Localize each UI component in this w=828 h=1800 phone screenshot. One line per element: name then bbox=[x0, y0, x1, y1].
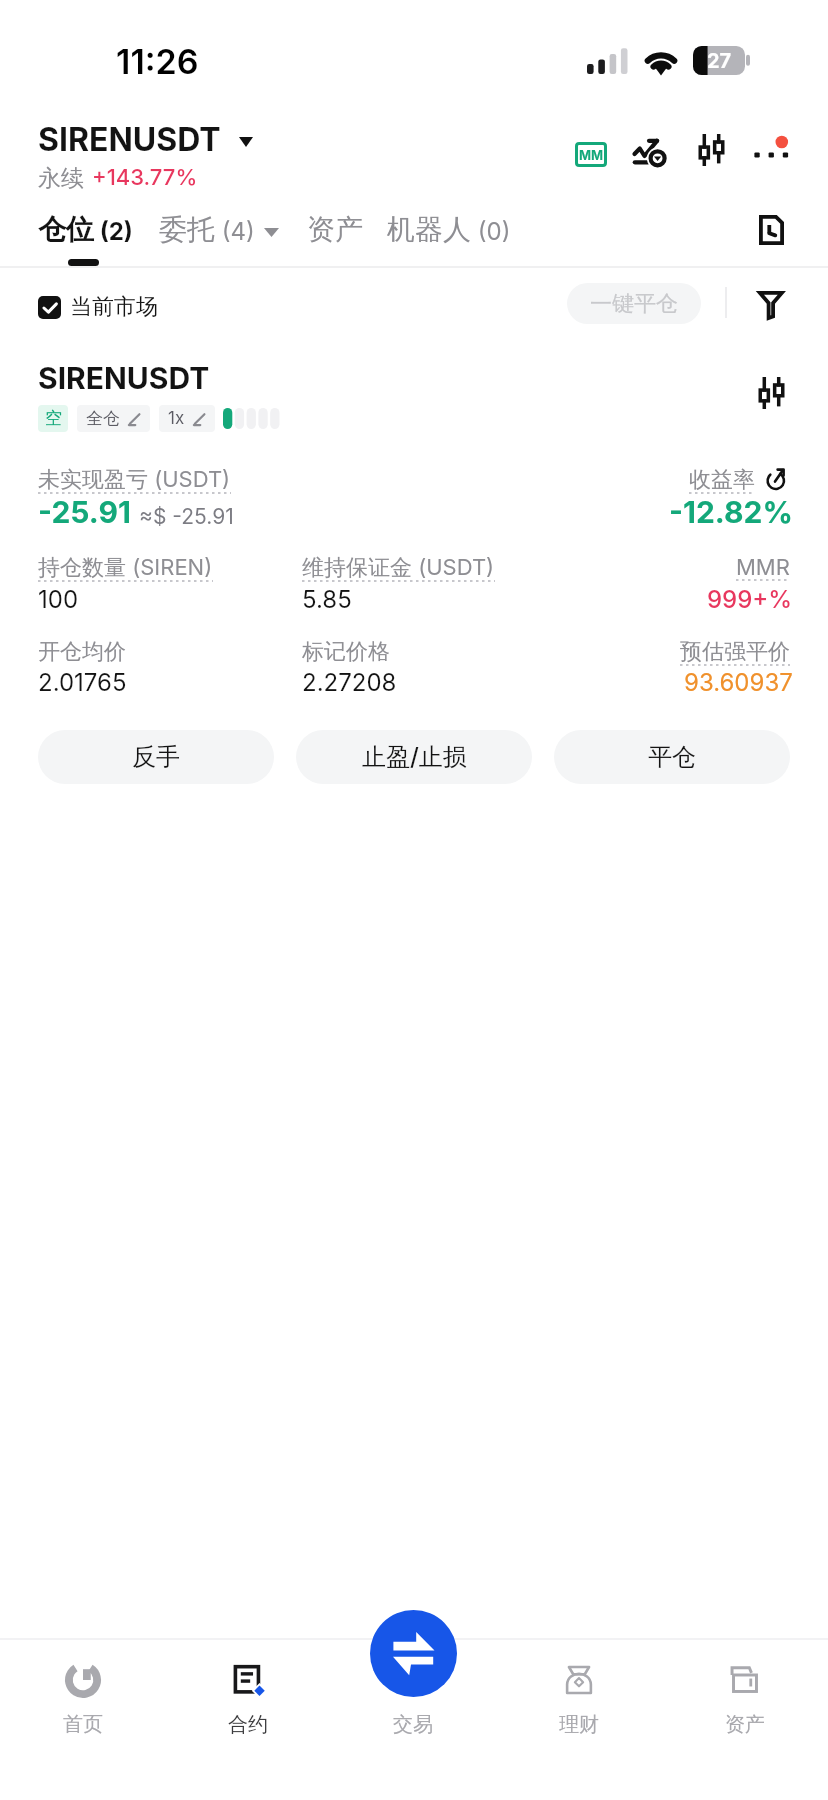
staticText: 93.60937 bbox=[684, 668, 793, 697]
staticText: 交易 bbox=[393, 1712, 433, 1737]
button[interactable]: Chart bbox=[628, 132, 672, 172]
staticText: 未实现盈亏 (USDT) bbox=[38, 466, 231, 494]
button[interactable]: 资产 bbox=[662, 1640, 828, 1800]
staticText: 理财 bbox=[559, 1712, 599, 1737]
staticText: MM bbox=[579, 147, 604, 163]
staticText: 资产 bbox=[725, 1712, 765, 1737]
button[interactable]: Open chart bbox=[749, 369, 795, 417]
staticText: 开仓均价 bbox=[38, 638, 126, 666]
staticText: 100 bbox=[38, 585, 79, 614]
staticText: (0) bbox=[471, 217, 511, 246]
button[interactable]: 机器人 bbox=[387, 212, 511, 247]
staticText: 反手 bbox=[132, 742, 180, 772]
staticText: 委托 bbox=[159, 212, 215, 247]
staticText: 一键平仓 bbox=[590, 290, 678, 318]
staticText: 1x bbox=[168, 408, 185, 429]
staticText: 首页 bbox=[63, 1712, 103, 1737]
button[interactable]: Candlestick chart bbox=[687, 126, 735, 174]
button[interactable]: 理财 bbox=[496, 1640, 662, 1800]
staticText: +143.77% bbox=[92, 164, 198, 191]
staticText: 机器人 bbox=[387, 212, 471, 247]
button[interactable]: 委托 bbox=[159, 212, 279, 247]
staticText: 止盈/止损 bbox=[362, 742, 467, 772]
button[interactable]: More options bbox=[748, 130, 794, 170]
staticText: 2.27208 bbox=[302, 668, 397, 697]
staticText: 全仓 bbox=[86, 408, 120, 429]
staticText: 资产 bbox=[307, 212, 363, 247]
button[interactable]: 首页 bbox=[0, 1640, 165, 1800]
button[interactable]: 交易 bbox=[330, 1640, 496, 1800]
staticText: 标记价格 bbox=[302, 638, 390, 666]
button[interactable]: 平仓 bbox=[554, 730, 790, 784]
staticText: 平仓 bbox=[648, 742, 696, 772]
button[interactable]: 反手 bbox=[38, 730, 274, 784]
button[interactable]: Order history bbox=[749, 206, 795, 254]
staticText: 维持保证金 (USDT) bbox=[302, 554, 495, 582]
staticText: 仓位 bbox=[38, 212, 94, 247]
button[interactable]: 1x bbox=[159, 405, 215, 432]
staticText: -25.91 bbox=[38, 494, 131, 530]
staticText: 持仓数量 (SIREN) bbox=[38, 554, 213, 582]
staticText: 空 bbox=[45, 408, 62, 429]
staticText: SIRENUSDT bbox=[38, 120, 221, 159]
button[interactable]: 合约 bbox=[165, 1640, 330, 1800]
button[interactable]: 仓位 bbox=[38, 212, 133, 247]
button[interactable]: SIRENUSDT bbox=[38, 120, 253, 193]
staticText: ≈$ -25.91 bbox=[139, 504, 234, 529]
button[interactable]: 止盈/止损 bbox=[296, 730, 532, 784]
staticText: MMR bbox=[736, 554, 790, 581]
staticText: 合约 bbox=[228, 1712, 268, 1737]
staticText: 收益率 bbox=[689, 466, 755, 494]
staticText: 2.01765 bbox=[38, 668, 127, 697]
staticText: 预估强平价 bbox=[680, 638, 790, 666]
staticText: 11:26 bbox=[116, 41, 199, 82]
button[interactable]: Trade bbox=[370, 1610, 457, 1697]
staticText: 当前市场 bbox=[70, 293, 158, 321]
staticText: (4) bbox=[215, 217, 255, 246]
staticText: (2) bbox=[94, 217, 133, 246]
button[interactable]: 全仓 bbox=[77, 405, 150, 432]
button[interactable]: 资产 bbox=[307, 212, 363, 247]
staticText: 永续 bbox=[38, 164, 84, 193]
button[interactable]: Filter bbox=[748, 281, 794, 329]
button[interactable]: 当前市场 bbox=[38, 293, 158, 321]
button[interactable]: Market maker bbox=[569, 136, 613, 173]
staticText: 999+% bbox=[707, 585, 793, 614]
staticText: 5.85 bbox=[302, 585, 352, 614]
staticText: 27 bbox=[707, 49, 732, 73]
button[interactable]: 一键平仓 bbox=[567, 283, 701, 324]
staticText: -12.82% bbox=[669, 494, 793, 530]
staticText: SIRENUSDT bbox=[38, 360, 210, 396]
